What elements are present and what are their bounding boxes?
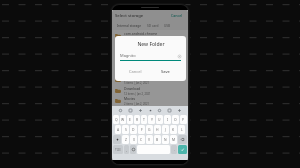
staticText: Z bbox=[125, 137, 127, 142]
button[interactable]: I bbox=[164, 115, 171, 124]
button[interactable]: U bbox=[156, 115, 163, 124]
button[interactable]: Movies bbox=[112, 96, 188, 106]
button[interactable]: Documents bbox=[112, 74, 188, 85]
button[interactable]: Cancel bbox=[120, 67, 150, 76]
button[interactable]: K bbox=[170, 125, 177, 134]
staticText: J bbox=[165, 127, 166, 132]
button[interactable]: G bbox=[146, 125, 153, 134]
button[interactable]: C bbox=[138, 135, 145, 144]
button[interactable]: N bbox=[162, 135, 169, 144]
button[interactable]: V bbox=[146, 135, 153, 144]
staticText: Android bbox=[124, 53, 137, 58]
staticText: Internal storage bbox=[117, 24, 142, 28]
button[interactable]: . bbox=[171, 145, 177, 154]
button[interactable]: ?123 bbox=[113, 145, 123, 154]
button[interactable]: USB bbox=[162, 23, 173, 29]
staticText: 5 items | Jan 2, 2021 bbox=[124, 81, 149, 85]
button[interactable]: Download bbox=[112, 85, 188, 96]
staticText: U bbox=[158, 117, 161, 122]
staticText: P bbox=[182, 117, 185, 122]
button[interactable]: Alarms bbox=[112, 41, 188, 52]
button[interactable]: Keyboard tool 3 bbox=[148, 108, 153, 113]
button[interactable]: Backspace bbox=[178, 135, 187, 144]
staticText: M bbox=[172, 137, 176, 142]
button[interactable]: P bbox=[180, 115, 187, 124]
button[interactable]: X bbox=[130, 135, 137, 144]
button[interactable]: T bbox=[141, 115, 147, 124]
button[interactable]: M bbox=[170, 135, 177, 144]
staticText: 2 items | Jan 2, 2021 bbox=[124, 102, 149, 106]
button[interactable]: DCIM bbox=[112, 63, 188, 74]
staticText: D bbox=[132, 127, 135, 132]
button[interactable]: SD card bbox=[145, 23, 161, 29]
button[interactable]: Q bbox=[113, 115, 119, 124]
staticText: R bbox=[136, 117, 139, 122]
button[interactable]: Enter bbox=[178, 145, 187, 154]
button[interactable]: L bbox=[178, 125, 185, 134]
staticText: USB bbox=[164, 24, 171, 28]
staticText: L bbox=[181, 127, 183, 132]
button[interactable]: , bbox=[124, 145, 129, 154]
staticText: F bbox=[141, 127, 143, 132]
button[interactable]: J bbox=[162, 125, 169, 134]
button[interactable]: E bbox=[127, 115, 133, 124]
staticText: O bbox=[174, 117, 177, 122]
staticText: Q bbox=[115, 117, 118, 122]
staticText: Cancel bbox=[171, 13, 183, 18]
staticText: G bbox=[148, 127, 151, 132]
button[interactable]: D bbox=[130, 125, 137, 134]
button[interactable]: Internal storage bbox=[115, 23, 144, 29]
staticText: New Folder bbox=[137, 41, 165, 48]
staticText: Magnito bbox=[120, 53, 136, 58]
button[interactable]: B bbox=[154, 135, 161, 144]
staticText: . bbox=[174, 148, 175, 152]
button[interactable]: Y bbox=[148, 115, 155, 124]
button[interactable]: F bbox=[138, 125, 145, 134]
staticText: H bbox=[156, 127, 159, 132]
staticText: com.android.chrome bbox=[124, 31, 158, 36]
button[interactable]: com.android.chrome bbox=[112, 30, 188, 41]
button[interactable]: Android bbox=[112, 52, 188, 63]
staticText: T bbox=[143, 117, 145, 122]
staticText: S bbox=[125, 127, 127, 132]
button[interactable]: Keyboard tool 4 bbox=[157, 108, 162, 113]
staticText: ?123 bbox=[115, 148, 121, 152]
staticText: 12 items | Jan 2, 2021 bbox=[124, 92, 151, 96]
button[interactable]: H bbox=[154, 125, 161, 134]
staticText: N bbox=[164, 137, 167, 142]
button[interactable]: Keyboard tool 0 bbox=[118, 108, 123, 113]
staticText: , bbox=[126, 148, 127, 152]
staticText: C bbox=[140, 137, 143, 142]
button[interactable]: Z bbox=[122, 135, 129, 144]
button[interactable]: Cancel bbox=[169, 12, 185, 19]
button[interactable]: O bbox=[172, 115, 179, 124]
button[interactable]: Keyboard tool 6 bbox=[177, 108, 182, 113]
button[interactable]: A bbox=[115, 125, 121, 134]
button[interactable]: W bbox=[120, 115, 126, 124]
staticText: SD card bbox=[147, 24, 159, 28]
button[interactable]: Keyboard tool 5 bbox=[167, 108, 172, 113]
staticText: I bbox=[167, 117, 169, 122]
staticText: A bbox=[117, 127, 120, 132]
staticText: Download bbox=[124, 86, 141, 91]
staticText: W bbox=[121, 117, 125, 122]
button[interactable]: Keyboard tool 1 bbox=[128, 108, 133, 113]
staticText: Cancel bbox=[129, 69, 142, 74]
staticText: 6 items | Jan 2, 2021 bbox=[124, 70, 149, 74]
button[interactable]: Save bbox=[150, 67, 181, 76]
staticText: Movies bbox=[124, 96, 136, 101]
button[interactable]: Emoji bbox=[130, 145, 136, 154]
staticText: Select storage bbox=[115, 13, 144, 19]
button[interactable]: Keyboard tool 2 bbox=[138, 108, 143, 113]
button[interactable]: Shift bbox=[113, 135, 121, 144]
button[interactable]: Clear text bbox=[177, 54, 181, 58]
button[interactable]: S bbox=[122, 125, 129, 134]
staticText: B bbox=[156, 137, 159, 142]
button[interactable]: R bbox=[134, 115, 140, 124]
